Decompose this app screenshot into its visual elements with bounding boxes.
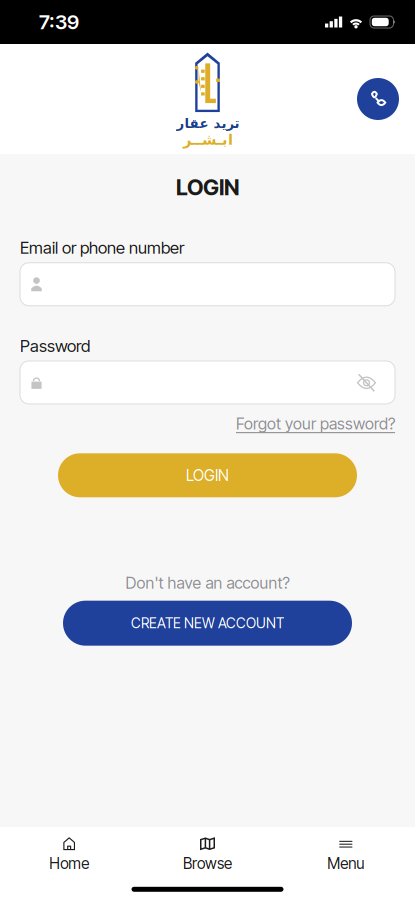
staticText: Don't have an account? xyxy=(125,573,289,593)
button[interactable]: CREATE NEW ACCOUNT xyxy=(63,601,352,646)
button[interactable]: Call xyxy=(357,78,399,120)
staticText: Menu xyxy=(327,854,364,873)
staticText: Password xyxy=(20,336,90,356)
staticText: Email or phone number xyxy=(20,238,184,258)
staticText: ابـشــر xyxy=(182,131,232,148)
button[interactable]: LOGIN xyxy=(58,453,357,497)
staticText: CREATE NEW ACCOUNT xyxy=(131,615,284,632)
staticText: Browse xyxy=(183,854,232,873)
staticText: تريد عقار xyxy=(176,116,239,131)
button[interactable]: Home xyxy=(0,826,138,879)
staticText: Home xyxy=(49,854,89,873)
staticText: LOGIN xyxy=(176,174,239,201)
staticText: LOGIN xyxy=(186,466,229,485)
button[interactable]: Forgot your password? xyxy=(236,414,395,433)
staticText: Forgot your password? xyxy=(236,414,395,433)
button[interactable]: Browse xyxy=(138,826,277,879)
staticText: 7:39 xyxy=(39,10,79,34)
button[interactable]: Menu xyxy=(277,826,415,879)
button[interactable]: Show password xyxy=(357,374,376,391)
